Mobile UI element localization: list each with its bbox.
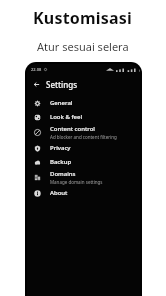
button[interactable]: Look & feel <box>27 110 140 124</box>
staticText: General <box>50 99 73 107</box>
staticText: Look & feel <box>50 113 83 121</box>
staticText: Ad blocker and content filtering <box>50 134 117 140</box>
staticText: Privacy <box>50 144 71 152</box>
button[interactable]: Back <box>31 79 42 90</box>
button[interactable]: Privacy <box>27 141 140 155</box>
button[interactable]: Content control <box>27 124 140 141</box>
staticText: Backup <box>50 158 72 166</box>
button[interactable]: About <box>27 186 140 200</box>
button[interactable]: Backup <box>27 155 140 169</box>
button[interactable]: General <box>27 96 140 110</box>
staticText: Settings <box>46 79 78 90</box>
staticText: Atur sesuai selera <box>37 39 129 54</box>
staticText: Domains <box>50 170 76 178</box>
button[interactable]: Domains <box>27 169 140 186</box>
staticText: 22.08 <box>31 67 42 72</box>
staticText: Kustomisasi <box>33 7 133 29</box>
staticText: About <box>50 189 68 197</box>
staticText: Manage domain settings <box>50 179 103 185</box>
staticText: Content control <box>50 125 95 133</box>
